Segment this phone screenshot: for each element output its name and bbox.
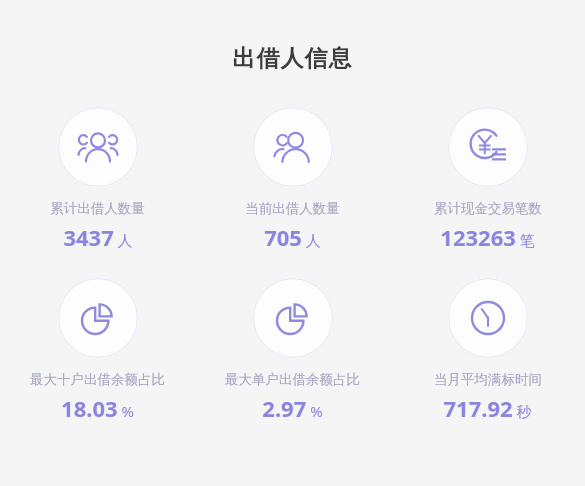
staticText: 当前出借人数量 — [245, 200, 340, 217]
button[interactable]: 最大十户出借余额占比 — [0, 278, 195, 423]
other: 当前出借人数量 — [253, 107, 333, 187]
other: 最大单户出借余额占比 — [253, 278, 333, 358]
other: 当月平均满标时间 — [448, 278, 528, 358]
staticText: 出借人信息 — [0, 44, 585, 73]
button[interactable]: 最大单户出借余额占比 — [195, 278, 390, 423]
button[interactable]: 累计现金交易笔数 — [390, 107, 585, 252]
staticText: 18.03 % — [61, 393, 134, 423]
staticText: 3437 人 — [63, 222, 133, 252]
button[interactable]: 累计出借人数量 — [0, 107, 195, 252]
other: 累计现金交易笔数 — [448, 107, 528, 187]
other: 累计出借人数量 — [58, 107, 138, 187]
staticText: 累计出借人数量 — [50, 200, 145, 217]
other: 最大十户出借余额占比 — [58, 278, 138, 358]
staticText: 123263 笔 — [440, 222, 535, 252]
button[interactable]: 当前出借人数量 — [195, 107, 390, 252]
staticText: 累计现金交易笔数 — [434, 200, 542, 217]
staticText: 最大单户出借余额占比 — [225, 371, 360, 388]
staticText: 最大十户出借余额占比 — [30, 371, 165, 388]
button[interactable]: 当月平均满标时间 — [390, 278, 585, 423]
staticText: 当月平均满标时间 — [434, 371, 542, 388]
staticText: 717.92 秒 — [443, 393, 532, 423]
staticText: 2.97 % — [262, 393, 323, 423]
staticText: 705 人 — [264, 222, 321, 252]
